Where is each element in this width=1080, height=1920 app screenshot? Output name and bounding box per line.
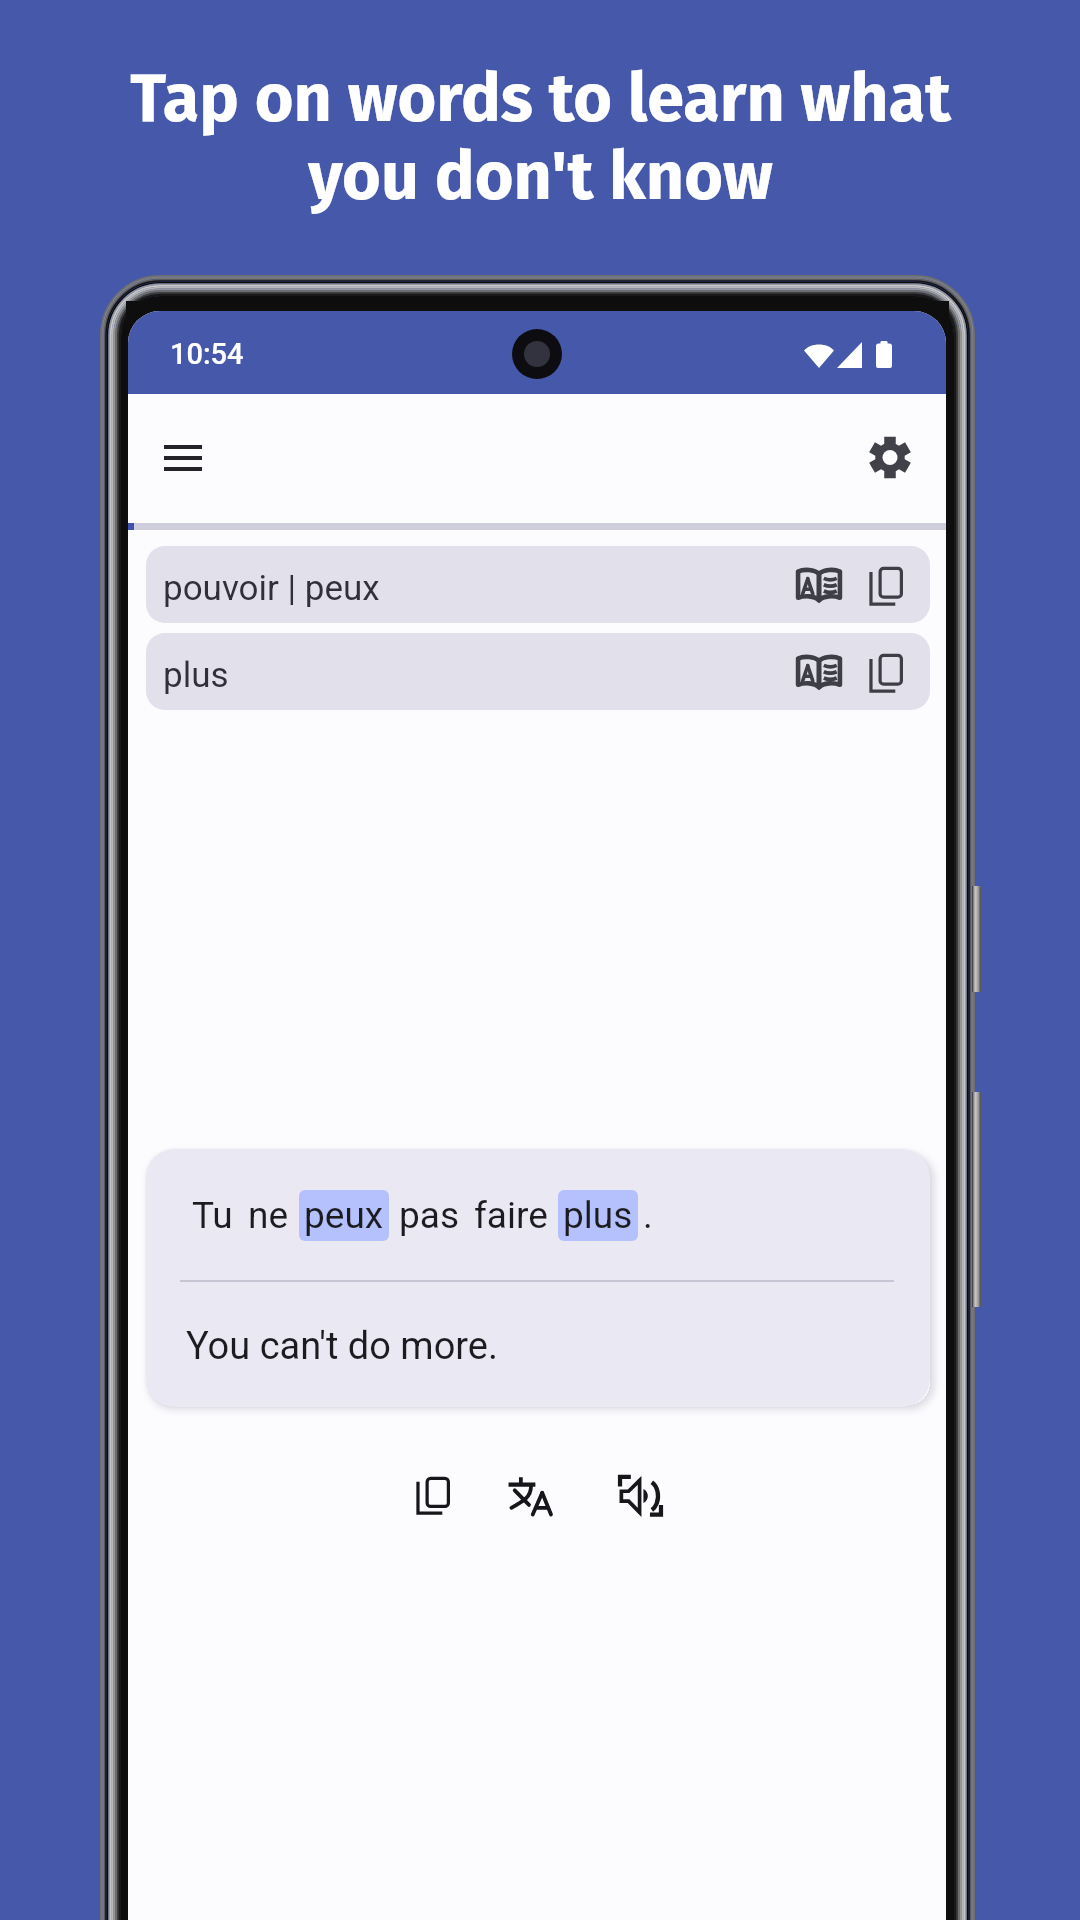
- button[interactable]: Copy word: [848, 635, 922, 709]
- button[interactable]: Menu: [143, 418, 223, 498]
- staticText: Tap on words to learn what you don't kno…: [130, 59, 951, 216]
- button[interactable]: Dictionary: [782, 635, 856, 709]
- staticText: peux: [304, 1194, 384, 1237]
- staticText: faire: [474, 1194, 548, 1237]
- button[interactable]: peux: [299, 1190, 389, 1241]
- staticText: pas: [399, 1194, 459, 1237]
- button[interactable]: Tu: [146, 1149, 930, 1407]
- staticText: Tu: [192, 1194, 233, 1237]
- button[interactable]: ne: [243, 1190, 294, 1241]
- button[interactable]: Translate: [489, 1455, 569, 1535]
- button[interactable]: Copy word: [848, 548, 922, 622]
- staticText: plus: [163, 655, 799, 696]
- button[interactable]: Tu: [187, 1190, 238, 1241]
- button[interactable]: faire: [469, 1190, 553, 1241]
- button[interactable]: Copy: [392, 1455, 472, 1535]
- button[interactable]: Settings: [850, 417, 930, 497]
- staticText: plus: [563, 1194, 633, 1237]
- staticText: .: [643, 1194, 653, 1237]
- staticText: 10:54: [170, 337, 244, 371]
- button[interactable]: Dictionary: [782, 548, 856, 622]
- button[interactable]: pouvoir | peux: [146, 546, 930, 623]
- staticText: ne: [248, 1194, 289, 1237]
- staticText: You can't do more.: [186, 1324, 498, 1369]
- button[interactable]: plus: [558, 1190, 638, 1241]
- button[interactable]: Listen: [600, 1455, 680, 1535]
- button[interactable]: pas: [394, 1190, 464, 1241]
- staticText: pouvoir | peux: [163, 568, 799, 609]
- button[interactable]: plus: [146, 633, 930, 710]
